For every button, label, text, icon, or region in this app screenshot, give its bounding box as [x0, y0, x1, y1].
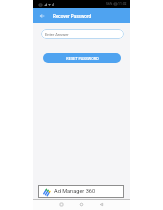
staticText: Ad Manager 360	[54, 188, 96, 195]
staticText: 11:32	[118, 2, 127, 6]
staticText: Recover Password	[53, 14, 92, 19]
staticText: 56%	[106, 2, 113, 6]
button[interactable]: Home	[76, 200, 86, 209]
button[interactable]: Ad Manager 360	[38, 185, 124, 198]
staticText: RESET PASSWORD	[66, 56, 99, 60]
staticText: Enter Answer	[45, 32, 69, 37]
button[interactable]: RESET PASSWORD	[43, 53, 121, 63]
button[interactable]: Recents	[56, 200, 66, 209]
button[interactable]: Back	[36, 10, 47, 21]
button[interactable]: Enter Answer	[41, 29, 124, 39]
button[interactable]: Back	[96, 200, 106, 209]
